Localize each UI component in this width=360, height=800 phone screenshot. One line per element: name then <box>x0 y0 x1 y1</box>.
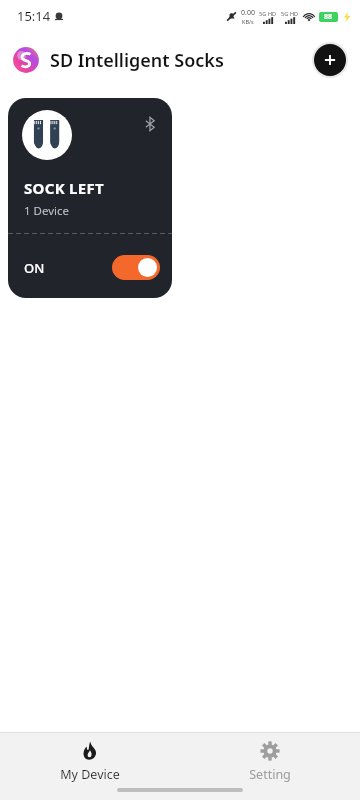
staticText: ON <box>24 259 45 277</box>
staticText: 5G <box>281 10 289 17</box>
button[interactable]: Add device <box>314 44 346 76</box>
staticText: My Device <box>60 766 120 783</box>
staticText: SD Intelligent Socks <box>50 48 224 73</box>
staticText: Setting <box>249 766 291 783</box>
staticText: 5G <box>259 10 267 17</box>
staticText: 15:14 <box>17 7 51 25</box>
staticText: 1 Device <box>24 203 70 219</box>
staticText: 0.00 <box>241 8 255 18</box>
button[interactable]: Power toggle on <box>112 255 160 280</box>
staticText: SOCK LEFT <box>24 178 104 198</box>
staticText: HD <box>290 10 299 17</box>
button[interactable]: SOCK LEFT <box>8 98 172 298</box>
staticText: 88 <box>324 12 333 22</box>
button[interactable]: Setting <box>180 733 360 788</box>
button[interactable]: My Device <box>0 733 180 788</box>
staticText: HD <box>268 10 277 17</box>
staticText: KB/s <box>242 18 254 25</box>
